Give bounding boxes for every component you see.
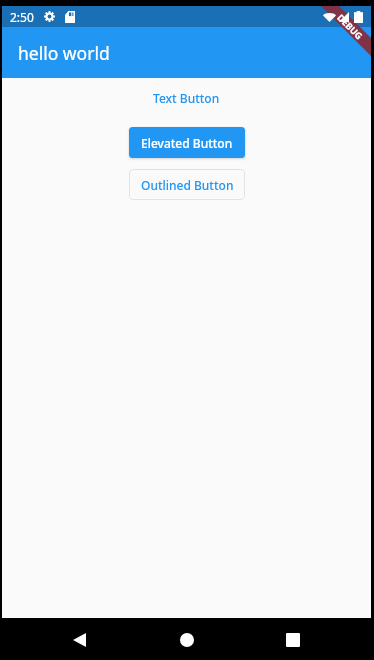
- staticText: hello world: [18, 41, 110, 65]
- button[interactable]: Outlined Button: [129, 169, 245, 200]
- button[interactable]: Recent apps: [271, 619, 314, 660]
- staticText: Elevated Button: [141, 135, 233, 151]
- button[interactable]: Home: [165, 619, 208, 660]
- button[interactable]: Text Button: [141, 86, 232, 110]
- staticText: DEBUG: [335, 11, 366, 42]
- staticText: Text Button: [153, 90, 220, 106]
- staticText: 2:50: [10, 9, 34, 25]
- button[interactable]: Back: [58, 619, 100, 660]
- staticText: Outlined Button: [141, 177, 234, 193]
- button[interactable]: Elevated Button: [129, 127, 245, 158]
